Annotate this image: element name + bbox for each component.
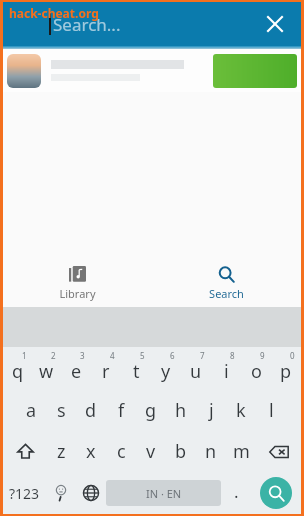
staticText: 6 xyxy=(170,350,175,361)
staticText: 1 xyxy=(22,350,27,361)
button[interactable]: Emoji and comma xyxy=(46,472,76,514)
staticText: g xyxy=(145,398,157,423)
staticText: . xyxy=(234,480,239,503)
staticText: 9 xyxy=(260,350,265,361)
button[interactable]: c xyxy=(106,431,136,472)
staticText: v xyxy=(146,439,156,464)
button[interactable]: l xyxy=(256,390,286,431)
button[interactable]: Close search xyxy=(257,6,293,42)
staticText: b xyxy=(175,439,187,464)
staticText: o xyxy=(251,359,262,384)
staticText: Library xyxy=(59,286,96,301)
button[interactable]: 5 xyxy=(121,347,151,390)
staticText: 5 xyxy=(140,350,145,361)
button[interactable]: 0 xyxy=(271,347,301,390)
button[interactable]: Shift xyxy=(3,431,47,472)
staticText: l xyxy=(269,398,274,423)
staticText: Search xyxy=(209,286,244,301)
staticText: t xyxy=(133,359,140,384)
button[interactable]: d xyxy=(76,390,106,431)
staticText: ?123 xyxy=(9,484,40,503)
staticText: r xyxy=(102,359,110,384)
staticText: h xyxy=(175,398,187,423)
button[interactable]: s xyxy=(46,390,76,431)
staticText: n xyxy=(205,439,217,464)
staticText: 3 xyxy=(80,350,85,361)
staticText: q xyxy=(12,359,24,384)
staticText: 4 xyxy=(110,350,115,361)
button[interactable]: 6 xyxy=(151,347,181,390)
button[interactable]: 3 xyxy=(61,347,91,390)
button[interactable]: n xyxy=(196,431,226,472)
staticText: d xyxy=(85,398,97,423)
button[interactable]: 7 xyxy=(181,347,211,390)
staticText: i xyxy=(224,359,229,384)
button[interactable]: . xyxy=(221,472,251,514)
button[interactable]: 1 xyxy=(3,347,32,390)
button[interactable]: v xyxy=(136,431,166,472)
button[interactable]: z xyxy=(47,431,76,472)
button[interactable]: 9 xyxy=(241,347,271,390)
button[interactable]: j xyxy=(196,390,226,431)
button[interactable]: Search xyxy=(260,477,292,509)
staticText: IN · EN xyxy=(146,486,182,501)
staticText: a xyxy=(26,398,37,423)
staticText: f xyxy=(118,398,125,423)
button[interactable]: k xyxy=(226,390,256,431)
button[interactable]: Change language xyxy=(76,472,106,514)
staticText: k xyxy=(236,398,246,423)
button[interactable]: x xyxy=(76,431,106,472)
staticText: 0 xyxy=(290,350,295,361)
button[interactable]: IN · EN xyxy=(106,480,221,506)
staticText: z xyxy=(57,439,66,464)
staticText: c xyxy=(117,439,126,464)
button[interactable]: 2 xyxy=(32,347,61,390)
button[interactable]: Install xyxy=(213,54,297,88)
staticText: w xyxy=(39,359,54,384)
button[interactable]: Library xyxy=(3,259,152,307)
button[interactable]: 4 xyxy=(91,347,121,390)
staticText: p xyxy=(280,359,292,384)
staticText: y xyxy=(161,359,171,384)
button[interactable]: g xyxy=(136,390,166,431)
button[interactable]: b xyxy=(166,431,196,472)
button[interactable]: f xyxy=(106,390,136,431)
staticText: m xyxy=(233,439,250,464)
button[interactable]: ?123 xyxy=(3,472,46,514)
button[interactable]: a xyxy=(17,390,46,431)
staticText: s xyxy=(57,398,66,423)
staticText: Search... xyxy=(53,13,121,36)
button[interactable]: Backspace xyxy=(256,431,301,472)
staticText: x xyxy=(86,439,96,464)
staticText: 2 xyxy=(51,350,56,361)
staticText: 8 xyxy=(230,350,235,361)
staticText: j xyxy=(209,398,214,423)
button[interactable]: m xyxy=(226,431,256,472)
staticText: hack-cheat.org xyxy=(9,5,99,21)
button[interactable]: h xyxy=(166,390,196,431)
button[interactable]: 8 xyxy=(211,347,241,390)
staticText: 7 xyxy=(200,350,205,361)
staticText: u xyxy=(190,359,202,384)
button[interactable]: Search xyxy=(152,259,301,307)
staticText: e xyxy=(71,359,82,384)
